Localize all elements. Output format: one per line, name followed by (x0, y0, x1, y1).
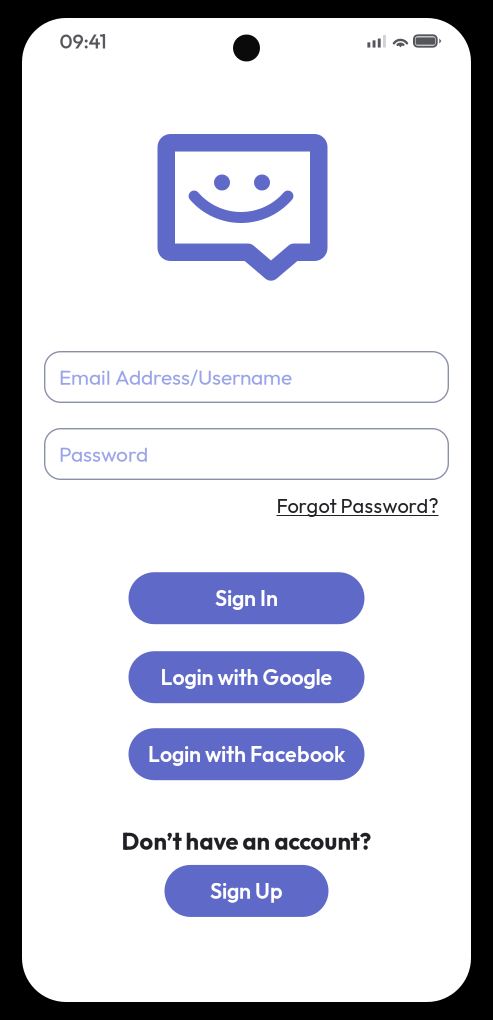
button[interactable]: Password (44, 428, 449, 480)
staticText: Forgot Password? (276, 493, 438, 518)
staticText: Login with Google (160, 664, 332, 691)
staticText: Sign Up (210, 877, 283, 904)
staticText: Password (59, 441, 148, 467)
button[interactable]: Sign Up (164, 865, 328, 917)
button[interactable]: Login with Google (128, 651, 364, 703)
staticText: Don’t have an account? (121, 826, 371, 856)
staticText: 09:41 (59, 28, 106, 54)
button[interactable]: Login with Facebook (128, 728, 364, 780)
button[interactable]: Sign In (128, 572, 364, 624)
staticText: Sign In (215, 585, 278, 612)
staticText: Login with Facebook (148, 741, 345, 768)
button[interactable]: Email Address/Username (44, 351, 449, 403)
staticText: Email Address/Username (59, 364, 292, 390)
button[interactable]: Forgot Password? (276, 493, 438, 518)
